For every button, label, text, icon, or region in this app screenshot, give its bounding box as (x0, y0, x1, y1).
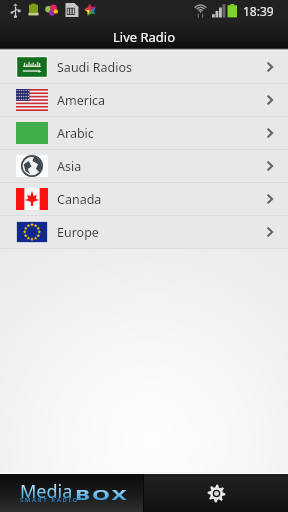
staticText: Saudi Radios (57, 59, 268, 76)
staticText: Media (20, 479, 73, 504)
staticText: Asia (57, 158, 268, 175)
staticText: Europe (57, 224, 268, 241)
staticText: Arabic (57, 125, 268, 142)
staticText: Canada (57, 191, 268, 208)
button[interactable]: Europe (0, 216, 288, 248)
button[interactable]: America (0, 84, 288, 116)
button[interactable]: Saudi Radios (0, 51, 288, 83)
button[interactable]: Settings (144, 474, 288, 512)
staticText: 18:39 (243, 3, 274, 19)
button[interactable]: Canada (0, 183, 288, 215)
staticText: Live Radio (113, 28, 176, 46)
staticText: SMART RADIO (20, 496, 79, 504)
button[interactable]: Media Box home (0, 474, 143, 512)
staticText: America (57, 92, 268, 109)
button[interactable]: Asia (0, 150, 288, 182)
button[interactable]: Arabic (0, 117, 288, 149)
staticText: BOX (75, 485, 130, 504)
